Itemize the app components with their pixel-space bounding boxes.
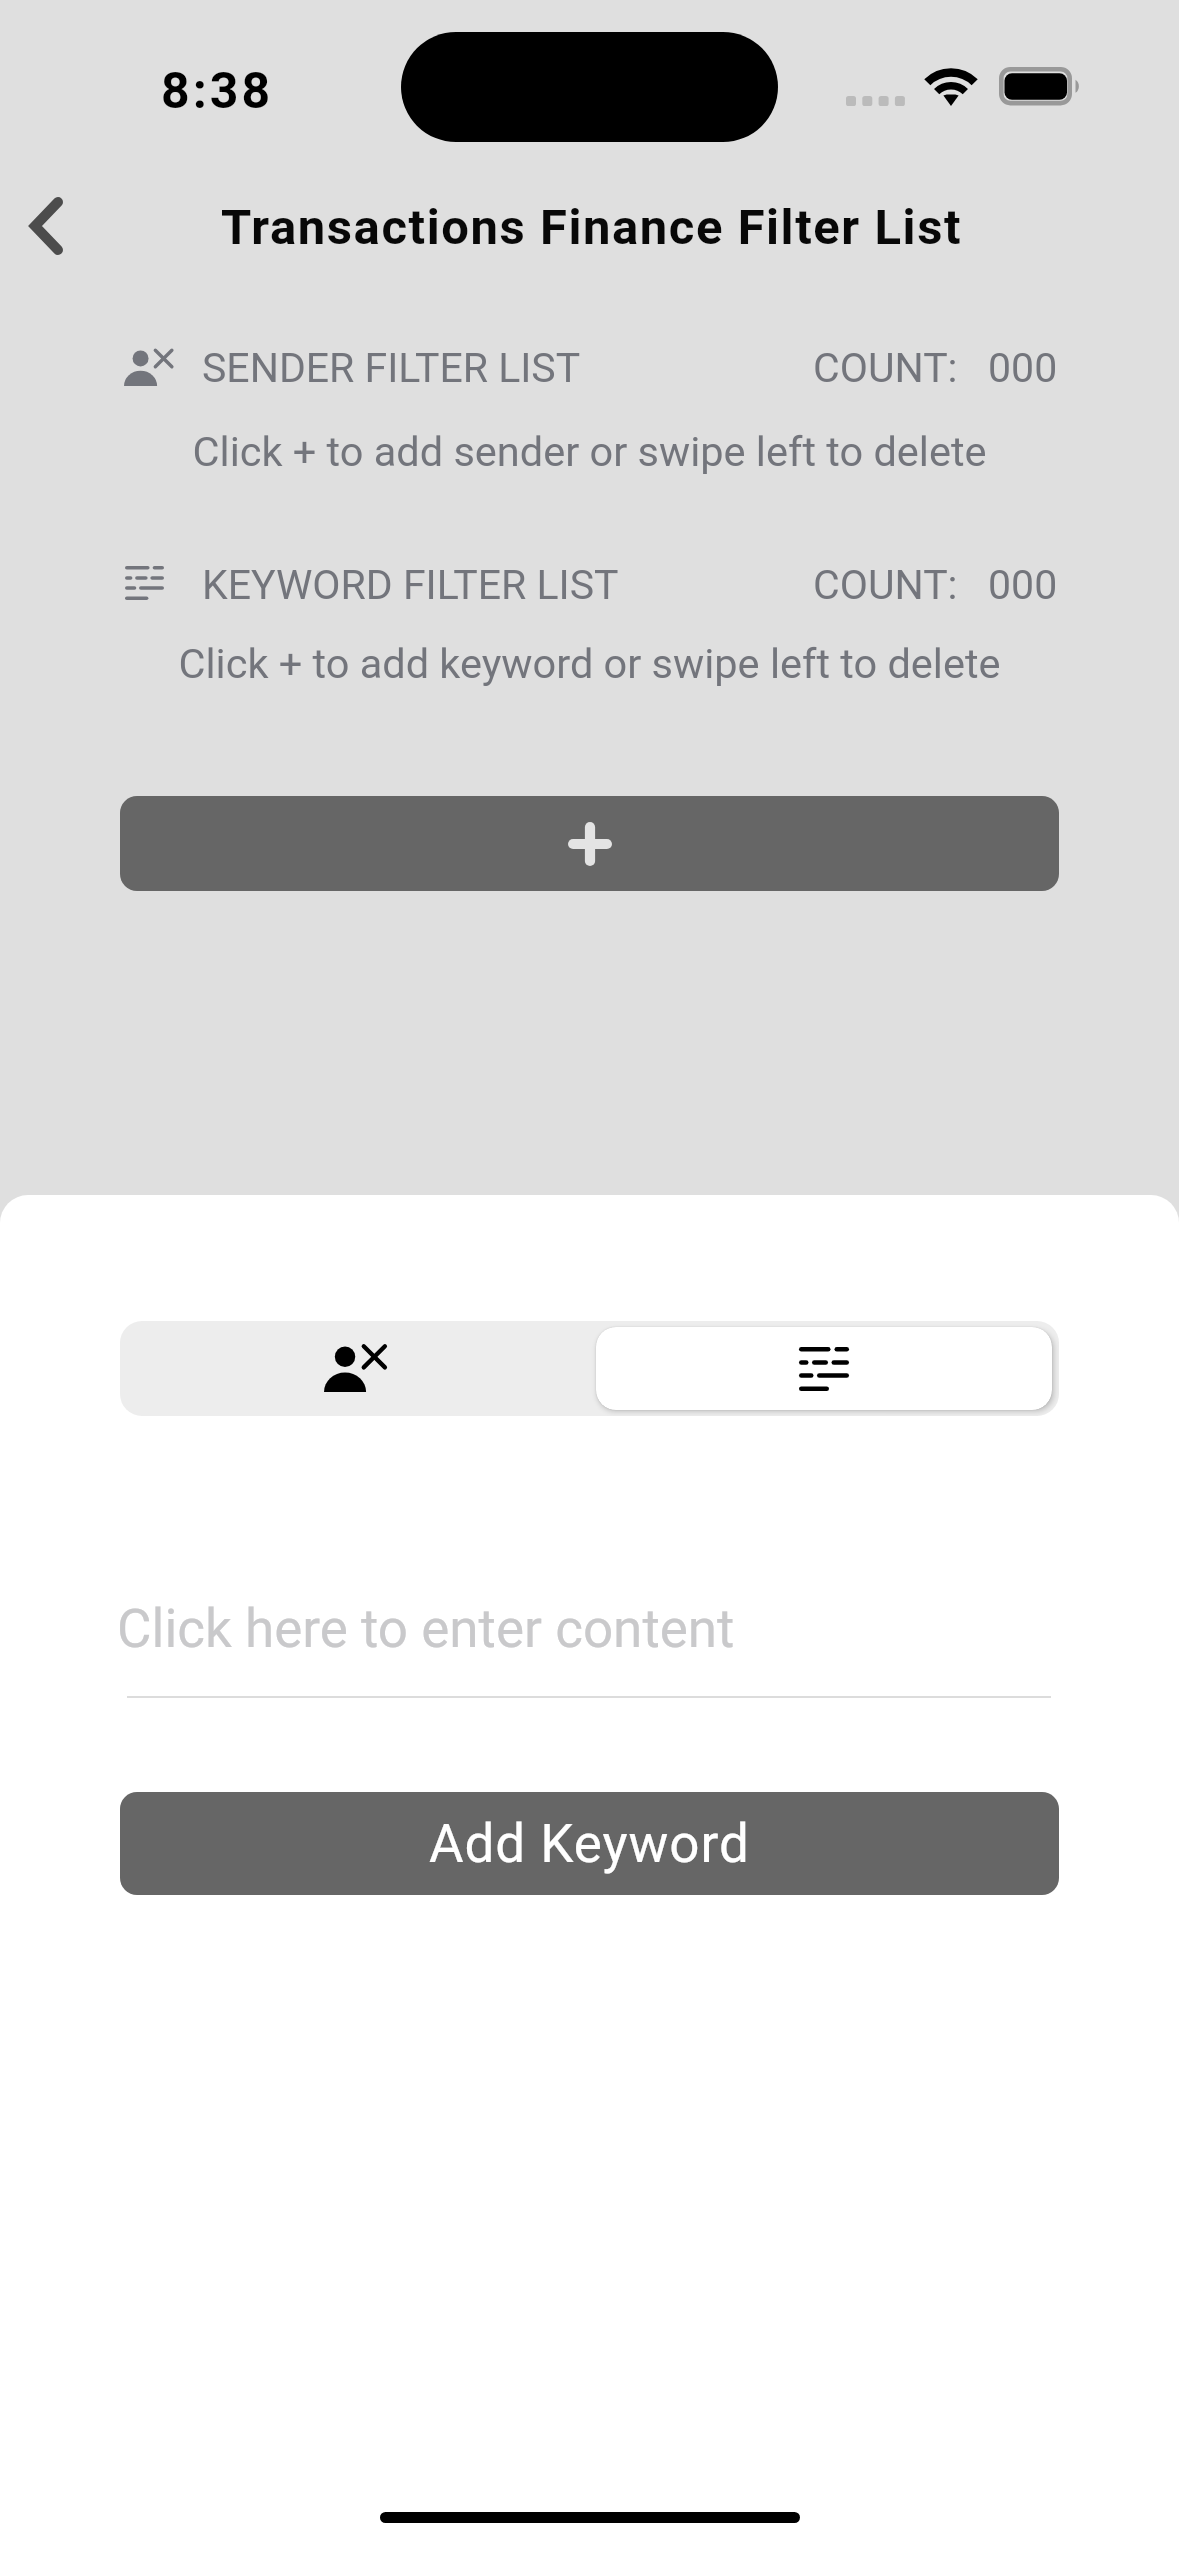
button[interactable]: Add Keyword <box>120 1792 1059 1895</box>
staticText: SENDER FILTER LIST <box>202 344 581 392</box>
button[interactable]: Add filter <box>120 796 1059 891</box>
staticText: Transactions Finance Filter List <box>221 199 963 256</box>
staticText: Click + to add sender or swipe left to d… <box>0 427 1179 476</box>
staticText: Click + to add keyword or swipe left to … <box>0 639 1179 688</box>
button[interactable]: Back <box>6 186 86 266</box>
staticText: 8:38 <box>161 62 274 121</box>
staticText: COUNT: 000 <box>813 561 1058 609</box>
staticText: COUNT: 000 <box>813 344 1058 392</box>
staticText: Add Keyword <box>429 1813 750 1875</box>
staticText: KEYWORD FILTER LIST <box>202 561 619 609</box>
staticText: Click here to enter content <box>117 1598 735 1660</box>
button[interactable]: Keyword filter tab <box>596 1327 1052 1410</box>
button[interactable]: Sender filter tab <box>120 1321 589 1416</box>
